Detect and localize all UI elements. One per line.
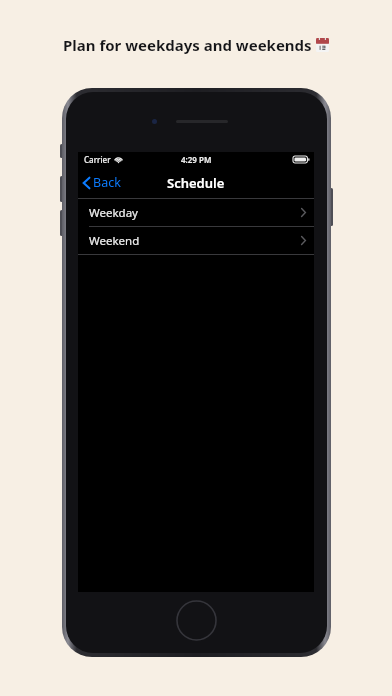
button[interactable]: Home — [176, 600, 217, 641]
staticText: Plan for weekdays and weekends — [63, 35, 312, 55]
button[interactable]: Weekday — [78, 199, 314, 226]
staticText: 4:29 PM — [181, 154, 212, 165]
button[interactable]: Weekend — [78, 227, 314, 254]
button[interactable]: Back — [78, 170, 129, 195]
staticText: Weekend — [89, 233, 140, 249]
staticText: Carrier — [84, 154, 111, 165]
staticText: Schedule — [167, 174, 225, 192]
staticText: Back — [93, 174, 121, 191]
staticText: Weekday — [89, 205, 138, 221]
